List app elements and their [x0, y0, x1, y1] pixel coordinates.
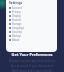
button[interactable]: Account	[9, 6, 55, 10]
button[interactable]: Notifications and privacy controls	[0, 69, 64, 72]
staticText: Language	[12, 26, 25, 30]
button[interactable]: About	[9, 38, 55, 42]
button[interactable]: Security	[9, 30, 55, 34]
staticText: Backup	[12, 34, 21, 38]
staticText: Display	[12, 14, 21, 18]
button[interactable]: Privacy	[9, 10, 55, 14]
button[interactable]: Sync across all of your devices here	[0, 64, 64, 68]
staticText: About	[12, 38, 20, 42]
button[interactable]: Language	[9, 26, 55, 30]
button[interactable]: Backup	[9, 34, 55, 38]
staticText: Settings	[9, 1, 23, 5]
button[interactable]: Manage how your app looks and runs	[0, 59, 64, 63]
button[interactable]: Sounds	[9, 18, 55, 22]
button[interactable]: Display	[9, 14, 55, 18]
staticText: Account	[12, 6, 22, 10]
button[interactable]: Storage	[9, 22, 55, 26]
staticText: Sounds	[12, 18, 22, 22]
staticText: Storage	[12, 22, 22, 26]
staticText: Security	[12, 30, 22, 34]
staticText: Get Your Preferences	[0, 52, 64, 57]
staticText: Privacy	[12, 10, 21, 14]
